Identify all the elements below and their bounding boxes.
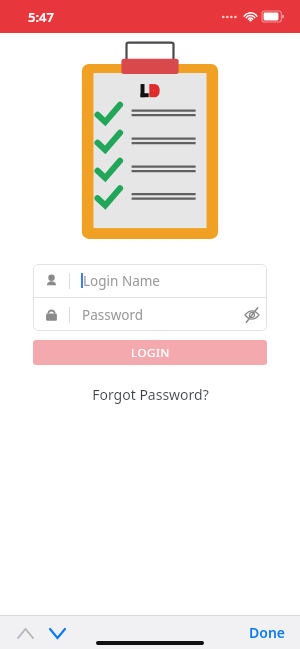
button[interactable]: LOGIN — [33, 340, 267, 365]
button[interactable]: Login Name — [33, 264, 267, 297]
button[interactable]: Previous field — [12, 620, 38, 646]
staticText: Login Name — [83, 272, 160, 290]
button[interactable]: Show password — [237, 300, 267, 330]
button[interactable]: Done — [235, 617, 300, 648]
staticText: Done — [249, 623, 286, 642]
button[interactable]: Password — [33, 298, 267, 331]
button[interactable]: Forgot Password? — [84, 382, 217, 407]
button[interactable]: Next field — [44, 620, 70, 646]
staticText: 5:47 — [28, 8, 54, 26]
staticText: Password — [82, 306, 144, 324]
staticText: LOGIN — [131, 345, 170, 361]
staticText: Forgot Password? — [92, 385, 209, 404]
